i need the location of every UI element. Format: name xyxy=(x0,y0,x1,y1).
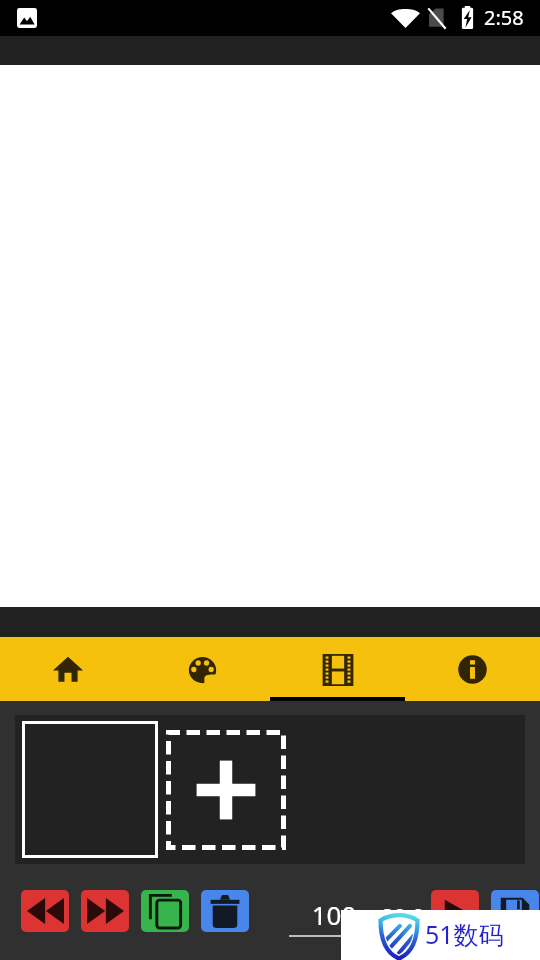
staticText: 2:58 xyxy=(484,4,524,31)
staticText: 80.0 xyxy=(381,901,425,931)
button[interactable]: Frame 1 xyxy=(22,721,158,858)
button[interactable]: Save xyxy=(491,890,539,932)
button[interactable]: Home xyxy=(0,637,135,701)
button[interactable]: Delete xyxy=(201,890,249,932)
button[interactable]: Palette xyxy=(135,637,270,701)
button[interactable]: Fast forward xyxy=(81,890,129,932)
button[interactable]: Film xyxy=(270,637,405,701)
button[interactable]: Play xyxy=(431,890,479,932)
button[interactable]: Add frame xyxy=(166,730,286,850)
button[interactable]: Info xyxy=(405,637,540,701)
button[interactable]: Rewind xyxy=(21,890,69,932)
staticText: 100 xyxy=(289,897,379,932)
button[interactable]: Copy xyxy=(141,890,189,932)
staticText: 51数码 xyxy=(425,917,504,951)
